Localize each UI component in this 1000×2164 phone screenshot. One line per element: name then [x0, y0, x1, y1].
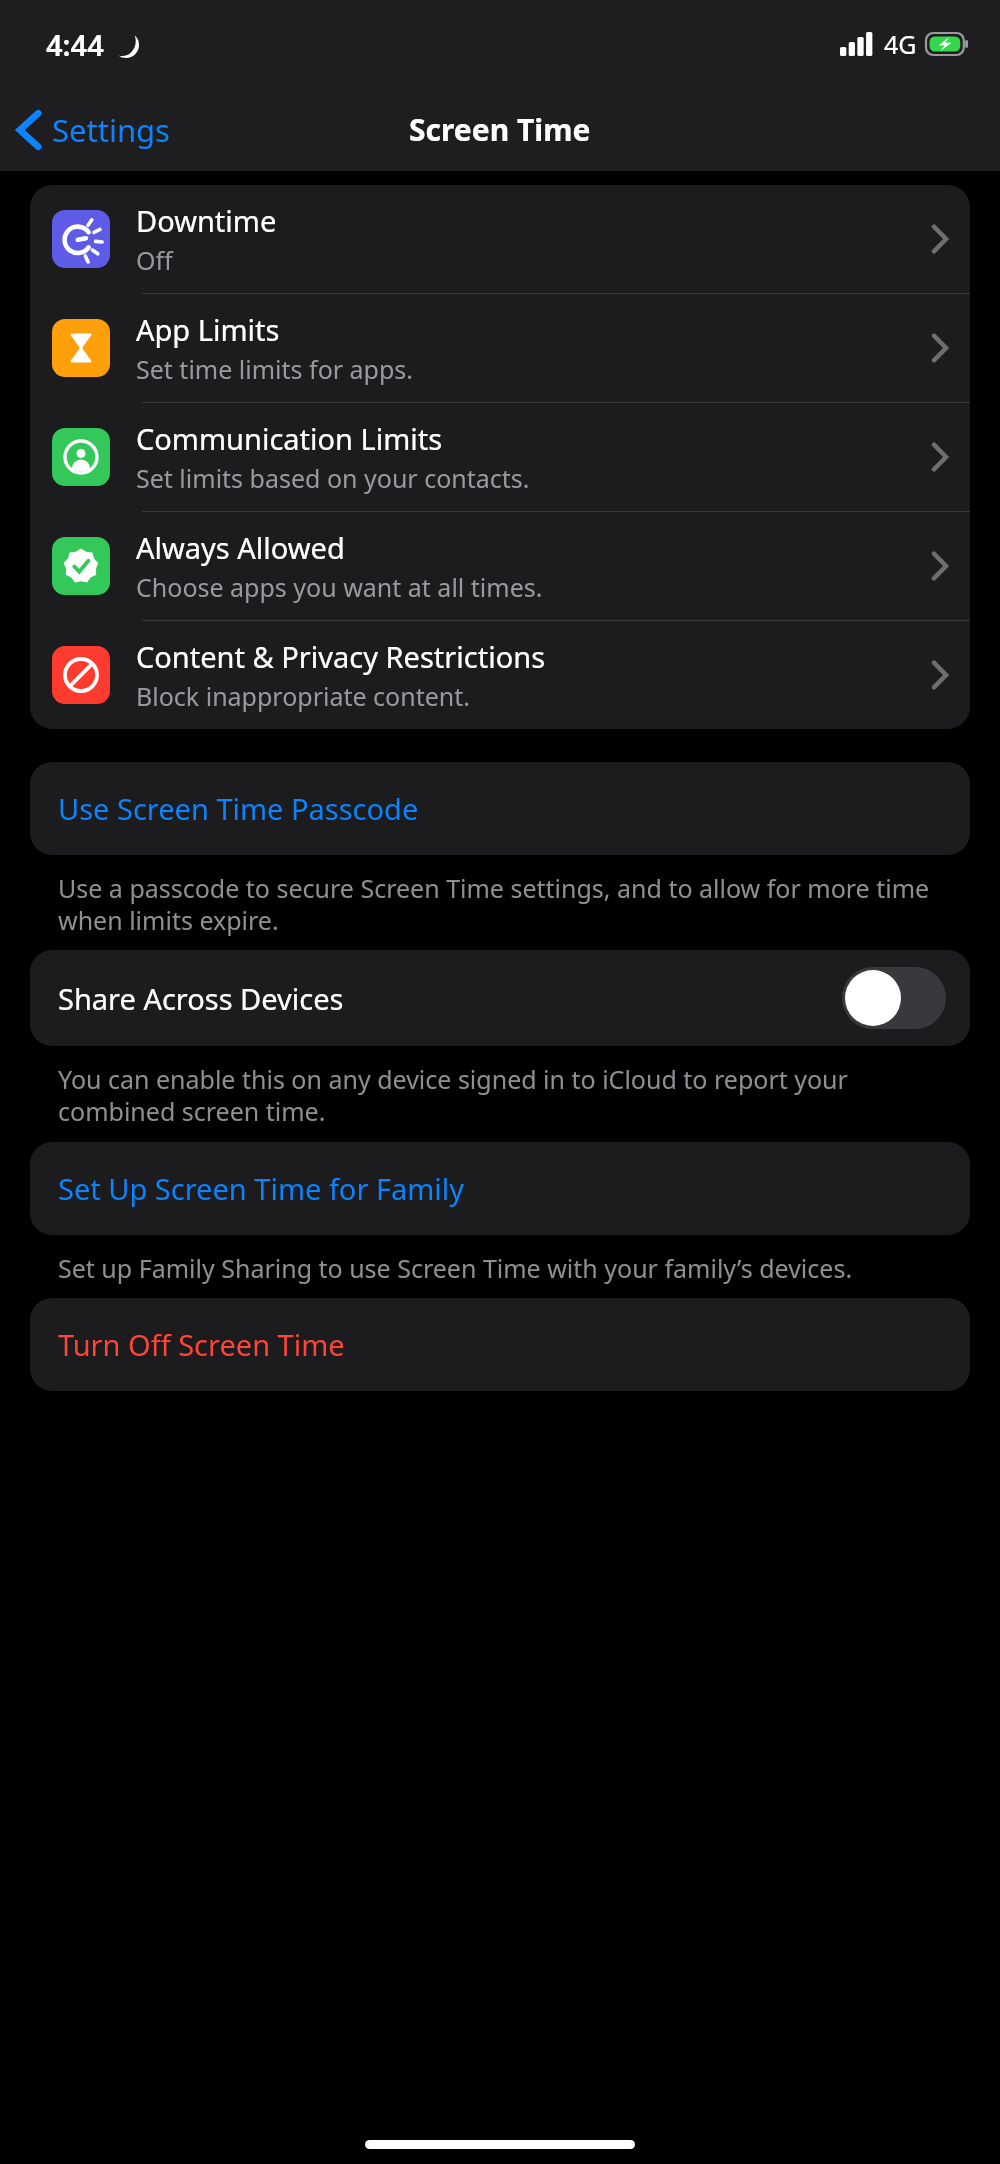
staticText: 4:44 [46, 25, 104, 64]
staticText: Choose apps you want at all times. [136, 570, 543, 604]
staticText: Set Up Screen Time for Family [58, 1169, 465, 1208]
staticText: Block inappropriate content. [136, 679, 470, 713]
button[interactable]: Downtime [30, 185, 970, 294]
staticText: Settings [52, 109, 170, 151]
button[interactable]: App Limits [30, 294, 970, 403]
button[interactable]: Share Across Devices toggle, off [842, 967, 946, 1029]
staticText: Set up Family Sharing to use Screen Time… [58, 1251, 853, 1285]
button[interactable]: Always Allowed [30, 512, 970, 621]
button[interactable]: Communication Limits [30, 403, 970, 512]
staticText: App Limits [136, 310, 280, 349]
staticText: Downtime [136, 201, 277, 240]
button[interactable]: Share Across Devices [30, 950, 970, 1046]
staticText: Communication Limits [136, 419, 443, 458]
button[interactable]: Set Up Screen Time for Family [30, 1142, 970, 1235]
button[interactable]: Content & Privacy Restrictions [30, 621, 970, 729]
staticText: Set time limits for apps. [136, 352, 414, 386]
staticText: Screen Time [409, 109, 591, 150]
staticText: Share Across Devices [58, 979, 842, 1018]
staticText: You can enable this on any device signed… [58, 1062, 942, 1128]
staticText: Set limits based on your contacts. [136, 461, 530, 495]
staticText: Content & Privacy Restrictions [136, 637, 546, 676]
staticText: Off [136, 243, 173, 277]
staticText: Use Screen Time Passcode [58, 789, 419, 828]
button[interactable]: Turn Off Screen Time [30, 1298, 970, 1391]
staticText: Use a passcode to secure Screen Time set… [58, 871, 942, 937]
staticText: 4G [884, 27, 917, 61]
button[interactable]: Settings [0, 101, 186, 159]
staticText: Turn Off Screen Time [58, 1325, 345, 1364]
button[interactable]: Use Screen Time Passcode [30, 762, 970, 855]
staticText: Always Allowed [136, 528, 345, 567]
